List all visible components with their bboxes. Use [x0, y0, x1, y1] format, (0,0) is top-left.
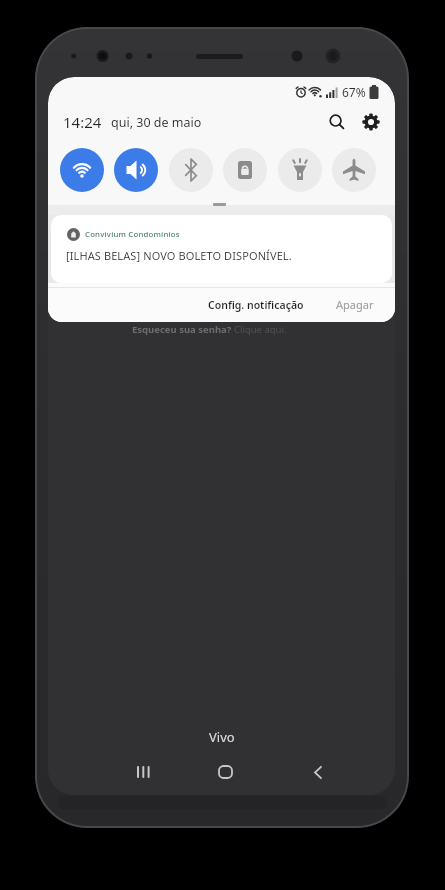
button[interactable]: [332, 148, 376, 192]
button[interactable]: [223, 148, 267, 192]
button[interactable]: [169, 148, 213, 192]
button[interactable]: [360, 111, 382, 133]
button[interactable]: [60, 148, 104, 192]
staticText: [ILHAS BELAS] NOVO BOLETO DISPONÍVEL.: [66, 248, 292, 263]
button[interactable]: Convivium Condomínios: [51, 215, 392, 283]
staticText: Convivium Condomínios: [85, 229, 180, 240]
button[interactable]: [306, 759, 330, 785]
staticText: 14:24: [63, 112, 102, 132]
button[interactable]: [131, 759, 155, 785]
button[interactable]: [326, 111, 348, 133]
button[interactable]: [213, 759, 237, 785]
staticText: Clique aqui.: [234, 323, 287, 336]
staticText: Config. notificação: [208, 298, 304, 312]
button[interactable]: [278, 148, 322, 192]
staticText: Esqueceu sua senha?: [132, 323, 234, 336]
staticText: qui, 30 de maio: [111, 114, 202, 131]
staticText: 67%: [342, 84, 366, 100]
button[interactable]: Config. notificação: [208, 298, 304, 312]
staticText: Vivo: [209, 728, 235, 746]
staticText: Apagar: [336, 297, 374, 312]
button[interactable]: [114, 148, 158, 192]
button[interactable]: Apagar: [336, 297, 374, 312]
